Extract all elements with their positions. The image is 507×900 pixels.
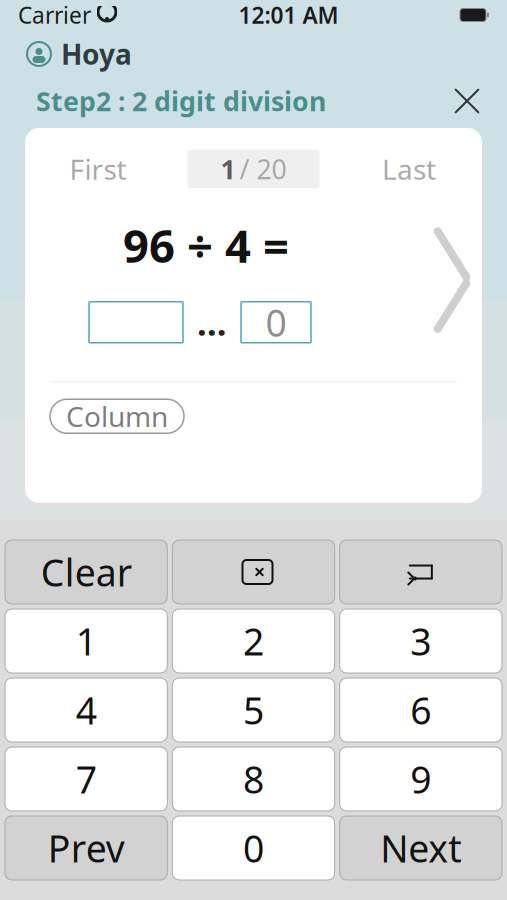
- button[interactable]: 4: [5, 678, 167, 742]
- button[interactable]: 0: [172, 816, 335, 880]
- button[interactable]: 9: [340, 747, 502, 811]
- staticText: Last: [382, 150, 436, 188]
- staticText: [91, 0, 97, 30]
- button[interactable]: Close: [445, 79, 489, 123]
- staticText: Column: [66, 398, 168, 435]
- staticText: 12:01 AM: [238, 0, 338, 30]
- button[interactable]: Next: [340, 816, 502, 880]
- button[interactable]: Last: [354, 149, 464, 189]
- button[interactable]: 6: [340, 678, 502, 742]
- staticText: Carrier: [18, 0, 91, 30]
- staticText: …: [197, 299, 227, 345]
- staticText: 4: [76, 685, 97, 735]
- staticText: 0: [265, 297, 286, 347]
- button[interactable]: Clear: [5, 540, 167, 604]
- button[interactable]: 5: [172, 678, 335, 742]
- button[interactable]: Column: [50, 399, 184, 433]
- button[interactable]: 7: [5, 747, 167, 811]
- button[interactable]: 2: [172, 609, 335, 673]
- staticText: / 20: [239, 151, 286, 187]
- button[interactable]: 3: [340, 609, 502, 673]
- staticText: 7: [76, 754, 97, 804]
- button[interactable]: Next problem: [422, 220, 482, 340]
- staticText: 3: [410, 616, 431, 666]
- button[interactable]: Prev: [5, 816, 167, 880]
- staticText: Next: [380, 823, 461, 873]
- button[interactable]: First: [43, 149, 153, 189]
- staticText: 2: [243, 616, 264, 666]
- staticText: Prev: [48, 823, 125, 873]
- staticText: 1: [76, 616, 97, 666]
- staticText: Clear: [41, 547, 132, 597]
- staticText: 5: [243, 685, 264, 735]
- staticText: 0: [243, 823, 264, 873]
- staticText: 8: [243, 754, 264, 804]
- staticText: 6: [410, 685, 431, 735]
- button[interactable]: Hoya: [26, 35, 132, 73]
- staticText: 96 ÷ 4 =: [123, 215, 289, 275]
- staticText: Step2 : 2 digit division: [36, 83, 326, 119]
- staticText: First: [69, 150, 126, 188]
- button[interactable]: 1: [187, 150, 319, 188]
- button[interactable]: Return: [340, 540, 502, 604]
- button[interactable]: Delete: [172, 540, 335, 604]
- button[interactable]: 8: [172, 747, 335, 811]
- button[interactable]: 1: [5, 609, 167, 673]
- staticText: Hoya: [61, 35, 132, 73]
- staticText: 9: [410, 754, 431, 804]
- staticText: 1: [220, 151, 235, 187]
